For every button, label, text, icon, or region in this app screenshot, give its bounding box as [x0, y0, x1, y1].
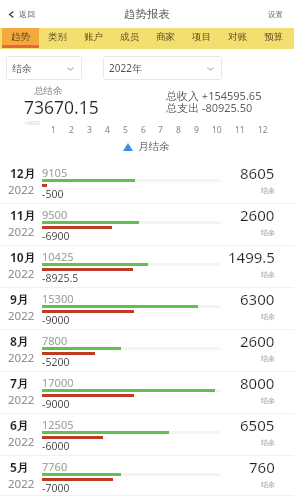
staticText: 760 [249, 457, 275, 477]
staticText: 2022 [8, 308, 35, 324]
staticText: 账户 [84, 31, 103, 43]
staticText: 6505 [240, 415, 275, 435]
staticText: 2022 [8, 350, 35, 366]
staticText: 7 [158, 124, 163, 136]
button[interactable]: 结余 [6, 56, 82, 80]
button[interactable]: 成员 [111, 28, 147, 49]
staticText: 2022 [8, 266, 35, 282]
staticText: 8 [176, 124, 181, 136]
staticText: -9000 [42, 397, 70, 411]
button[interactable]: 项目 [183, 28, 219, 49]
staticText: 趋势 [11, 31, 30, 43]
staticText: 3 [87, 124, 92, 136]
staticText: -9000 [42, 313, 70, 327]
staticText: 1 [51, 124, 56, 136]
staticText: 5月 [10, 459, 29, 475]
staticText: 7800 [42, 333, 68, 348]
button[interactable]: 预算 [255, 28, 291, 49]
staticText: 总收入 +154595.65 [166, 88, 262, 103]
staticText: 11 [235, 124, 245, 136]
staticText: 2600 [240, 205, 275, 225]
staticText: 结余 [12, 62, 32, 75]
button[interactable]: 5月 [0, 456, 294, 496]
staticText: 2022 [8, 392, 35, 408]
staticText: 12月 [10, 165, 36, 181]
staticText: 2022 [8, 224, 35, 240]
staticText: 6300 [240, 289, 275, 309]
staticText: -5200 [42, 355, 70, 369]
staticText: 8000 [240, 373, 275, 393]
staticText: 预算 [264, 31, 283, 43]
staticText: 2022 [8, 182, 35, 198]
staticText: 9月 [10, 291, 29, 307]
staticText: 7月 [10, 375, 29, 391]
staticText: 9105 [42, 165, 68, 180]
staticText: 2600 [240, 331, 275, 351]
staticText: 2022 [8, 434, 35, 450]
staticText: 结余 [261, 354, 275, 363]
staticText: -8925.5 [42, 271, 79, 285]
staticText: 项目 [192, 31, 211, 43]
staticText: -10000 [24, 120, 40, 127]
staticText: 10 [212, 124, 222, 136]
staticText: 2022年 [109, 61, 142, 75]
staticText: 8605 [240, 163, 275, 183]
staticText: 12 [258, 124, 268, 136]
staticText: 1499.5 [228, 247, 275, 267]
staticText: 商家 [156, 31, 175, 43]
button[interactable]: 对账 [219, 28, 255, 49]
staticText: 10月 [10, 249, 36, 265]
staticText: 2 [69, 124, 74, 136]
button[interactable]: 账户 [75, 28, 111, 49]
button[interactable]: 商家 [147, 28, 183, 49]
button[interactable]: 7月 [0, 372, 294, 414]
staticText: 结余 [261, 228, 275, 237]
staticText: 6月 [10, 417, 29, 433]
staticText: 17000 [42, 375, 74, 390]
staticText: 结余 [261, 396, 275, 405]
staticText: 4 [105, 124, 110, 136]
staticText: 6 [141, 124, 146, 136]
staticText: 9500 [42, 207, 68, 222]
staticText: 月结余 [138, 140, 170, 153]
staticText: 结余 [261, 480, 275, 489]
staticText: 成员 [120, 31, 139, 43]
button[interactable]: 返回 [7, 9, 35, 19]
staticText: 11月 [10, 207, 36, 223]
staticText: -6900 [42, 229, 70, 243]
staticText: 趋势报表 [124, 7, 170, 21]
button[interactable]: 趋势 [2, 28, 39, 49]
button[interactable]: 6月 [0, 414, 294, 456]
staticText: 10425 [42, 249, 74, 264]
button[interactable]: 2022年 [103, 56, 222, 80]
button[interactable]: 11月 [0, 204, 294, 246]
button[interactable]: 10月 [0, 246, 294, 288]
staticText: -500 [42, 187, 64, 201]
staticText: 结余 [261, 270, 275, 279]
staticText: 总结余 [34, 85, 63, 97]
staticText: 结余 [261, 186, 275, 195]
staticText: 12505 [42, 417, 74, 432]
staticText: 15300 [42, 291, 74, 306]
staticText: 结余 [261, 312, 275, 321]
button[interactable]: 9月 [0, 288, 294, 330]
staticText: 2022 [8, 476, 35, 492]
staticText: -6000 [42, 439, 70, 453]
staticText: 8月 [10, 333, 29, 349]
staticText: 返回 [19, 9, 35, 19]
staticText: 9 [194, 124, 199, 136]
button[interactable]: 12月 [0, 162, 294, 204]
staticText: 7760 [42, 459, 68, 474]
staticText: 5 [123, 124, 128, 136]
button[interactable]: 类别 [39, 28, 75, 49]
staticText: -7000 [42, 481, 70, 495]
staticText: 73670.15 [24, 95, 99, 119]
staticText: 类别 [48, 31, 67, 43]
staticText: 总支出 -80925.50 [166, 100, 253, 115]
staticText: 对账 [228, 31, 247, 43]
button[interactable]: 8月 [0, 330, 294, 372]
staticText: 结余 [261, 438, 275, 447]
button[interactable]: 设置 [268, 10, 283, 19]
